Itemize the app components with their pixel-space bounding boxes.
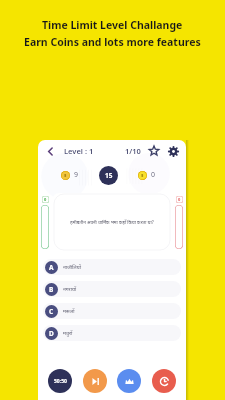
button[interactable]: Restart [152, 369, 176, 393]
staticText: 1/10 [125, 146, 141, 156]
staticText: 50:50 [54, 378, 67, 385]
button[interactable]: Hint [117, 369, 141, 393]
button[interactable]: Timer 50:50 [48, 369, 72, 393]
button[interactable]: B [43, 281, 181, 297]
button[interactable]: D [43, 325, 181, 341]
staticText: 0 [44, 197, 47, 202]
button[interactable]: हमीबतीन अपनी धार्मिक भमा कहाँ किया करता … [53, 193, 171, 251]
staticText: 0 [178, 197, 181, 202]
staticText: B [49, 285, 54, 294]
staticText: 9 [74, 170, 79, 180]
button[interactable]: C [43, 303, 181, 319]
staticText: Time Limit Level Challange [42, 18, 183, 32]
button[interactable]: Timer [99, 166, 118, 185]
staticText: $ [64, 173, 67, 179]
staticText: 15 [105, 171, 113, 180]
staticText: A [49, 263, 54, 272]
button[interactable]: Skip [83, 369, 107, 393]
button[interactable]: Back [43, 144, 57, 158]
staticText: D [49, 329, 54, 338]
button[interactable]: Favorite [147, 144, 161, 158]
staticText: मरूलों [63, 308, 75, 315]
button[interactable]: A [43, 259, 181, 275]
button[interactable]: Settings [166, 144, 180, 158]
staticText: C [49, 307, 54, 316]
staticText: $ [141, 173, 144, 179]
staticText: 0 [151, 170, 156, 180]
staticText: मधुरों [63, 330, 73, 337]
staticText: Earn Coins and lots more features [24, 35, 201, 49]
staticText: नाजीलियों [63, 264, 81, 271]
staticText: नगरायों [63, 286, 77, 293]
staticText: हमीबतीन अपनी धार्मिक भमा कहाँ किया करता … [70, 219, 154, 225]
staticText: Level : 1 [64, 146, 94, 156]
